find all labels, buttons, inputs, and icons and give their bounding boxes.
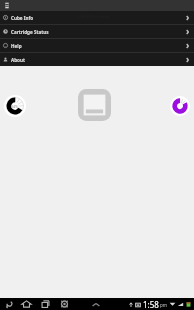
button[interactable]: Show keyboard [90,298,102,310]
button[interactable]: Home [20,298,33,310]
button[interactable]: Cube usage [4,95,26,117]
staticText: 84% [11,104,19,109]
button[interactable]: Help [0,39,194,52]
button[interactable]: Recent apps [39,298,52,310]
button[interactable]: Open navigation menu [1,0,13,11]
button[interactable]: Cube Info [0,11,194,24]
button[interactable]: Back [3,298,16,310]
staticText: About [11,57,25,63]
staticText: Help [11,43,22,49]
staticText: 1:58 [143,299,159,310]
button[interactable]: Screenshot [58,298,71,310]
button[interactable]: Cartridge Status [0,25,194,38]
staticText: Cartridge Status [11,29,49,35]
button[interactable]: Cartridge [78,89,111,121]
button[interactable]: About [0,53,194,66]
button[interactable]: Cartridge level [170,96,190,116]
staticText: Cube Info [11,15,34,21]
staticText: pm [160,302,167,308]
